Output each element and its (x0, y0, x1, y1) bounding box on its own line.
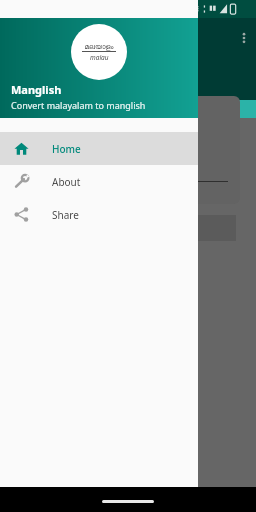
button[interactable]: Home (0, 132, 198, 165)
staticText: Manglish (11, 82, 62, 97)
staticText: Share (52, 208, 79, 222)
staticText: മലയാളം (84, 43, 114, 50)
staticText: Convert malayalam to manglish (11, 99, 146, 111)
staticText: malau (90, 53, 109, 62)
staticText: About (52, 175, 81, 189)
button[interactable]: About (0, 165, 198, 198)
button[interactable]: More options (232, 26, 256, 50)
button[interactable]: Share (0, 198, 198, 231)
staticText: Home (52, 142, 81, 156)
button[interactable]: COPY (12, 215, 236, 241)
